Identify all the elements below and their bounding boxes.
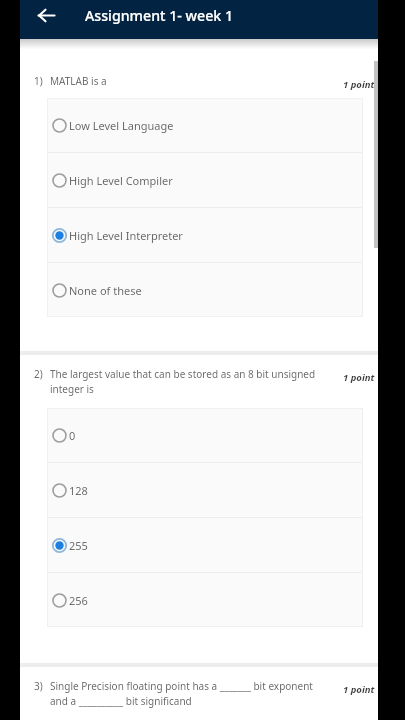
staticText: 1 point <box>343 371 375 384</box>
staticText: The largest value that can be stored as … <box>50 367 340 396</box>
staticText: 255 <box>69 538 88 553</box>
button[interactable]: Low Level Language <box>47 98 363 152</box>
staticText: 2) <box>34 367 43 381</box>
staticText: High Level Interpreter <box>69 228 183 243</box>
staticText: Single Precision floating point has a __… <box>50 679 340 708</box>
staticText: 3) <box>34 679 43 693</box>
staticText: 1 point <box>343 78 375 91</box>
button[interactable]: Back <box>31 0 62 31</box>
button[interactable]: 0 <box>47 408 363 462</box>
staticText: Assignment 1- week 1 <box>85 6 234 25</box>
staticText: Low Level Language <box>69 118 174 133</box>
staticText: MATLAB is a <box>50 74 340 88</box>
button[interactable]: 256 <box>47 573 363 627</box>
staticText: 1 point <box>343 683 375 696</box>
button[interactable]: None of these <box>47 263 363 317</box>
button[interactable]: 255 <box>47 518 363 572</box>
button[interactable]: High Level Compiler <box>47 153 363 207</box>
staticText: 128 <box>69 483 88 498</box>
staticText: High Level Compiler <box>69 173 173 188</box>
button[interactable]: High Level Interpreter <box>47 208 363 262</box>
button[interactable]: 128 <box>47 463 363 517</box>
staticText: 0 <box>69 428 76 443</box>
staticText: 256 <box>69 593 88 608</box>
staticText: 1) <box>34 74 43 88</box>
staticText: None of these <box>69 283 142 298</box>
